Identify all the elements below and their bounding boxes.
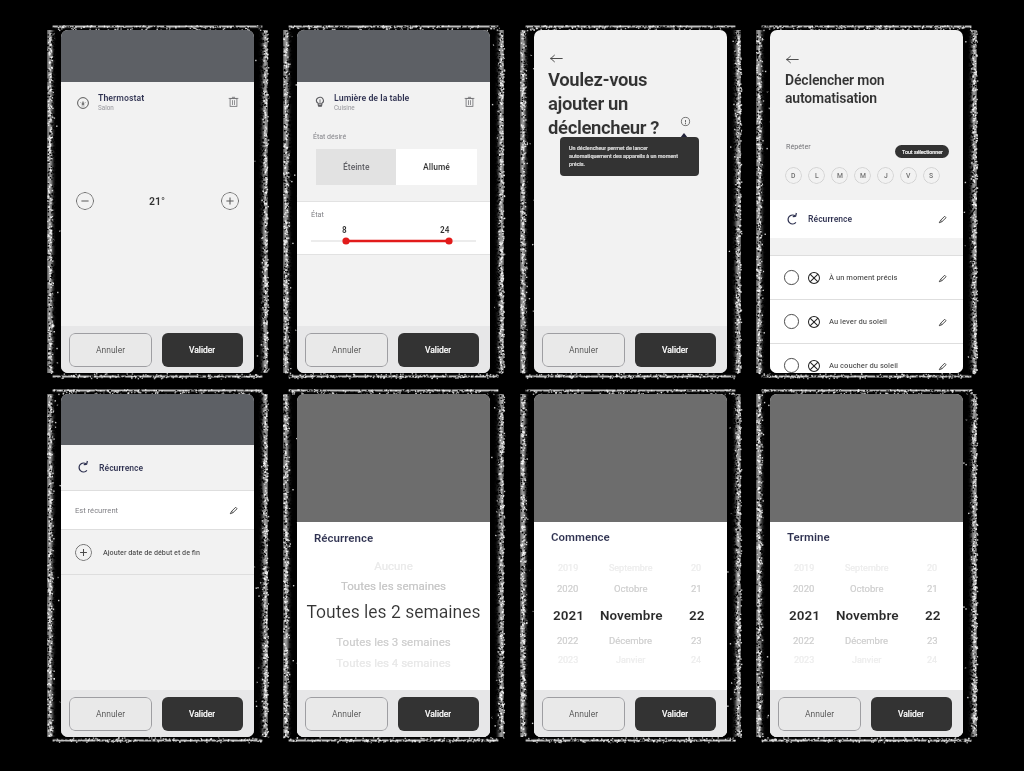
button[interactable]: Ajouter date de début et de fin [61, 530, 254, 574]
staticText: 24 [691, 655, 702, 666]
button[interactable]: Récurrence [61, 445, 254, 490]
button[interactable]: Valider [871, 697, 952, 731]
button[interactable]: Ajouter date de début et de fin [75, 544, 92, 561]
staticText: Annuler [805, 709, 835, 719]
staticText: Voulez-vous ajouter un déclencheur ? [548, 69, 660, 138]
button[interactable]: V [900, 167, 917, 184]
staticText: Annuler [96, 709, 126, 719]
staticText: 24 [440, 225, 450, 235]
staticText: Au lever du soleil [829, 317, 887, 326]
button[interactable]: Est récurrent [61, 491, 254, 529]
staticText: Valider [425, 709, 452, 719]
staticText: Termine [787, 530, 830, 543]
staticText: Cuisine [334, 104, 355, 111]
staticText: Janvier [616, 655, 646, 666]
staticText: 22 [689, 607, 705, 621]
button[interactable]: Au coucher du soleil [770, 344, 963, 373]
button[interactable]: Allumé [396, 149, 477, 185]
staticText: Toutes les 3 semaines [297, 635, 490, 648]
button[interactable]: S [923, 167, 940, 184]
button[interactable]: J [877, 167, 894, 184]
button[interactable]: Valider [162, 333, 243, 367]
staticText: Éteinte [343, 162, 370, 172]
staticText: Janvier [852, 655, 882, 666]
staticText: 2021 [789, 607, 820, 621]
staticText: V [906, 172, 911, 180]
button[interactable]: L [808, 167, 825, 184]
button[interactable]: Supprimer [224, 92, 242, 110]
button[interactable]: Supprimer [460, 92, 478, 110]
button[interactable]: Annuler [778, 697, 861, 731]
button[interactable]: Valider [635, 697, 716, 731]
button[interactable]: Récurrence [770, 200, 963, 238]
button[interactable]: Annuler [542, 697, 625, 731]
staticText: Allumé [423, 162, 450, 172]
staticText: Valider [425, 345, 452, 355]
staticText: Septembre [845, 563, 889, 574]
staticText: Au coucher du soleil [829, 361, 899, 370]
staticText: Ajouter date de début et de fin [103, 548, 201, 556]
button[interactable]: M [831, 167, 848, 184]
staticText: Déclencher mon automatisation [785, 72, 885, 107]
staticText: 21 [691, 583, 702, 594]
staticText: 2022 [793, 635, 815, 646]
button[interactable]: Annuler [542, 333, 625, 367]
staticText: Valider [662, 345, 689, 355]
staticText: 2023 [558, 655, 579, 666]
staticText: Annuler [96, 345, 126, 355]
staticText: Commence [551, 530, 610, 543]
button[interactable]: Modifier [226, 503, 240, 517]
button[interactable]: Modifier [935, 359, 949, 373]
button[interactable]: Information [679, 115, 691, 127]
staticText: Octobre [614, 583, 648, 594]
staticText: État désiré [313, 133, 347, 141]
staticText: Salon [98, 104, 114, 111]
staticText: L [815, 172, 819, 180]
button[interactable]: Éteinte [316, 149, 396, 185]
button[interactable]: Valider [398, 697, 479, 731]
button[interactable]: Annuler [305, 697, 388, 731]
staticText: Décembre [609, 635, 653, 646]
staticText: Thermostat [98, 93, 145, 103]
button[interactable]: Modifier [935, 212, 949, 226]
button[interactable]: Valider [635, 333, 716, 367]
staticText: 2019 [558, 563, 579, 574]
button[interactable]: Diminuer [76, 192, 94, 210]
button[interactable]: Modifier [935, 271, 949, 285]
staticText: 23 [927, 635, 938, 646]
staticText: Récurrence [808, 214, 853, 224]
staticText: 2020 [793, 583, 815, 594]
button[interactable]: Annuler [69, 697, 152, 731]
button[interactable]: À un moment précis [770, 256, 963, 299]
button[interactable]: Tout sélectionner [895, 145, 949, 158]
staticText: Toutes les 2 semaines [297, 602, 490, 623]
button[interactable]: Modifier [935, 315, 949, 329]
staticText: Un déclencheur permet de lancer automati… [569, 145, 682, 168]
staticText: 2020 [557, 583, 579, 594]
staticText: 22 [925, 607, 941, 621]
button[interactable]: Annuler [305, 333, 388, 367]
staticText: 2021 [553, 607, 584, 621]
staticText: 2019 [794, 563, 815, 574]
staticText: Septembre [609, 563, 653, 574]
staticText: État [311, 210, 324, 219]
staticText: 24 [927, 655, 938, 666]
button[interactable]: Valider [162, 697, 243, 731]
staticText: Novembre [836, 607, 899, 621]
button[interactable]: Valider [398, 333, 479, 367]
staticText: M [837, 172, 843, 180]
button[interactable]: D [785, 167, 802, 184]
button[interactable]: M [854, 167, 871, 184]
button[interactable]: Retour [786, 51, 802, 67]
button[interactable]: Annuler [69, 333, 152, 367]
staticText: 21 [927, 583, 938, 594]
button[interactable]: Au lever du soleil [770, 300, 963, 343]
button[interactable]: Retour [550, 50, 566, 66]
staticText: Annuler [332, 345, 362, 355]
staticText: À un moment précis [829, 273, 898, 282]
staticText: Aucune [297, 559, 490, 572]
staticText: Valider [189, 709, 216, 719]
button[interactable]: Augmenter [221, 192, 239, 210]
staticText: Toutes les 4 semaines [297, 656, 490, 669]
staticText: M [860, 172, 866, 180]
